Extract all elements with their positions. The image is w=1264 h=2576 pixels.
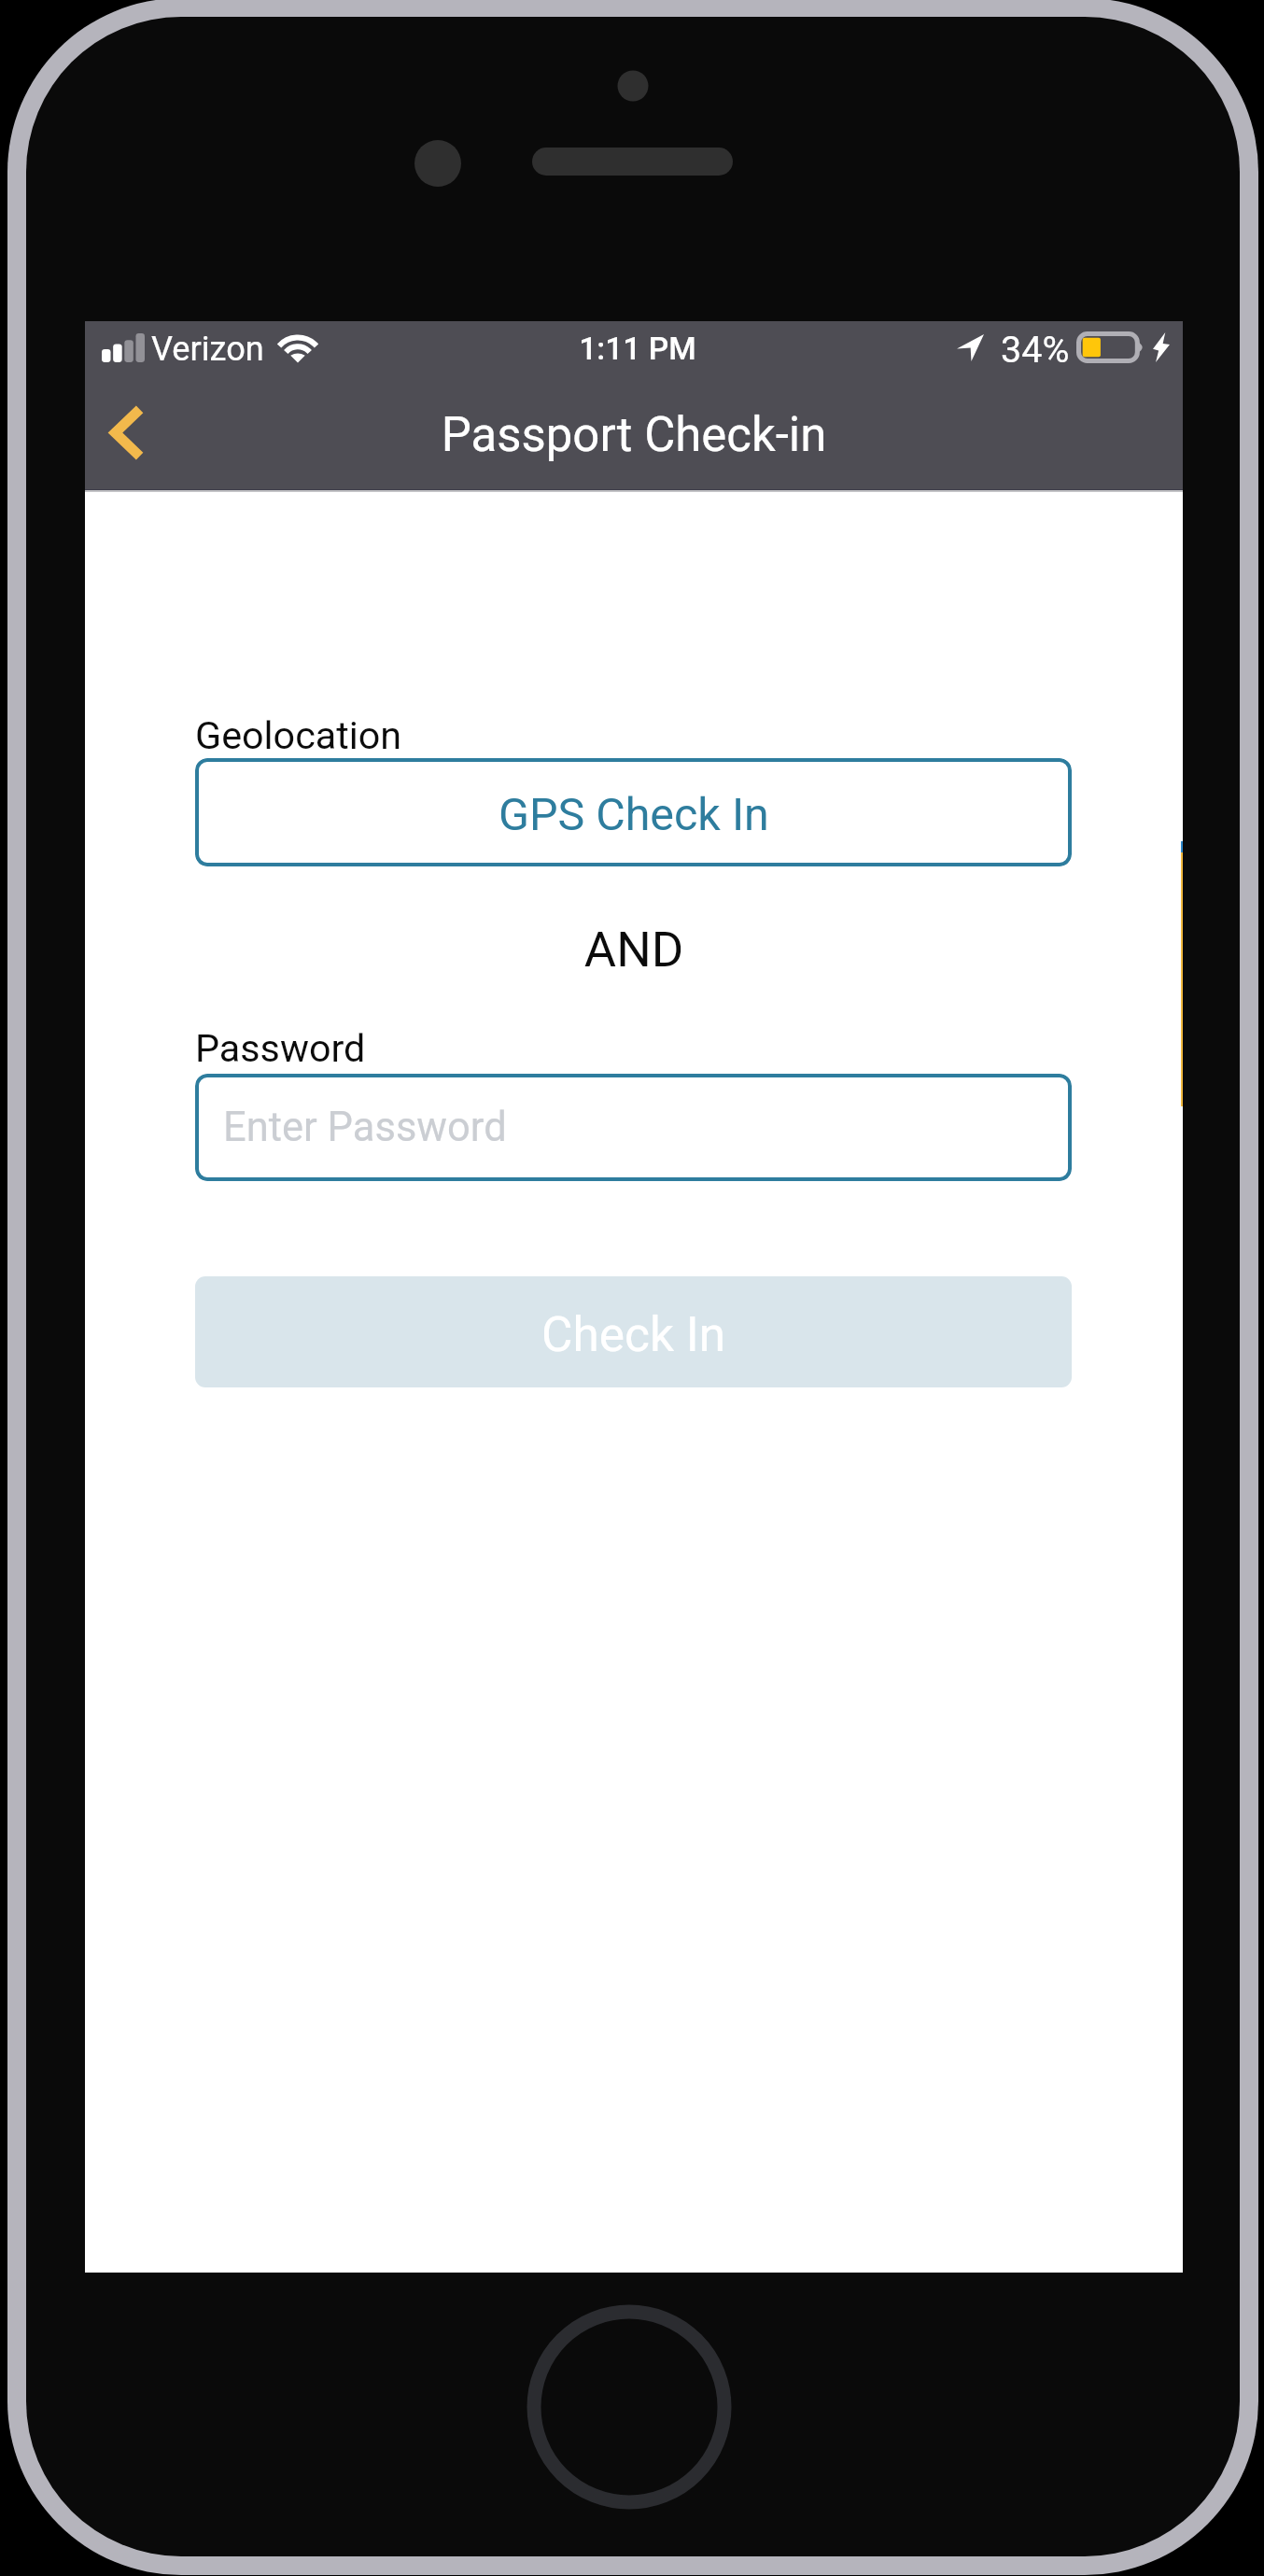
staticText: Check In bbox=[541, 1306, 726, 1362]
button[interactable]: Enter Password bbox=[195, 1074, 1072, 1181]
other: Cellular signal bbox=[102, 333, 145, 362]
button[interactable]: Back bbox=[85, 390, 195, 489]
staticText: Passport Check-in bbox=[85, 407, 1183, 463]
staticText: GPS Check In bbox=[499, 788, 769, 841]
button[interactable]: Check In bbox=[195, 1276, 1072, 1387]
staticText: Enter Password bbox=[223, 1104, 507, 1151]
other: Wi-Fi bbox=[278, 333, 317, 363]
other: Battery 34 percent bbox=[1076, 331, 1147, 363]
staticText: 34% bbox=[1001, 328, 1070, 371]
other: Location in use bbox=[957, 334, 984, 361]
staticText: Password bbox=[195, 1026, 366, 1071]
other: Charging bbox=[1153, 332, 1170, 362]
staticText: Geolocation bbox=[195, 713, 402, 758]
staticText: 1:11 PM bbox=[89, 331, 1187, 367]
staticText: Verizon bbox=[151, 329, 264, 368]
staticText: AND bbox=[85, 921, 1183, 978]
button[interactable]: GPS Check In bbox=[195, 758, 1072, 866]
